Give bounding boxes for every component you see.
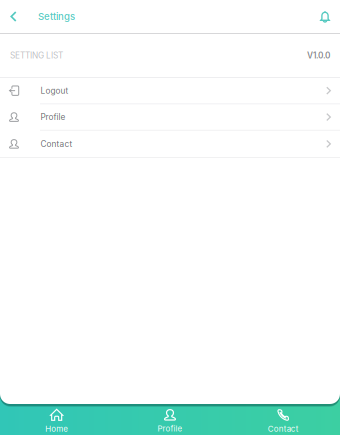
button[interactable]: Home [0,409,113,434]
staticText: Settings [38,11,75,22]
button[interactable]: Profile [113,409,227,433]
button[interactable]: Back [0,0,27,33]
staticText: Profile [40,112,65,122]
staticText: V1.0.0 [307,50,330,60]
button[interactable]: Profile [0,104,340,131]
button[interactable]: Contact [227,409,340,434]
staticText: Logout [40,86,68,96]
staticText: SETTING LIST [10,50,63,60]
staticText: Profile [157,424,182,433]
button[interactable]: Logout [0,78,340,104]
button[interactable]: Contact [0,131,340,157]
staticText: Contact [268,424,299,434]
staticText: Contact [40,139,72,149]
staticText: Home [45,424,68,434]
button[interactable]: Notifications [310,0,340,33]
